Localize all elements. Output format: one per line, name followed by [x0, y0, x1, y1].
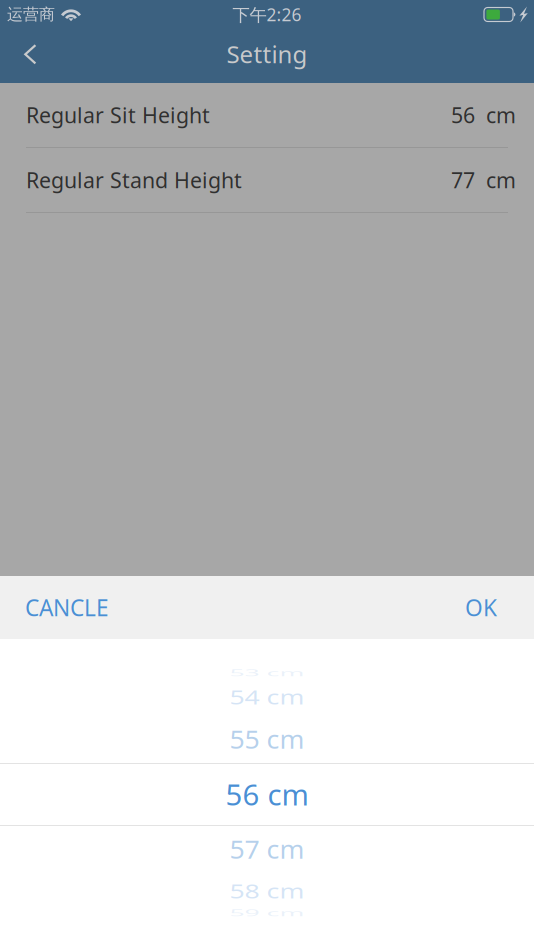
staticText: Regular Stand Height [26, 166, 242, 194]
staticText: 58 cm [229, 873, 304, 909]
staticText: 56 [451, 101, 475, 129]
staticText: 57 cm [229, 831, 304, 867]
staticText: cm [486, 101, 516, 129]
staticText: Setting [226, 38, 307, 70]
staticText: 54 cm [229, 679, 304, 715]
staticText: Regular Sit Height [26, 101, 210, 129]
button[interactable]: Regular Sit Height [0, 83, 534, 148]
staticText: cm [486, 166, 516, 194]
button[interactable]: CANCLE [0, 576, 200, 639]
staticText: 56 cm [225, 774, 308, 813]
staticText: 53 cm [229, 655, 304, 691]
staticText: 运营商 [7, 5, 55, 24]
staticText: 59 cm [229, 895, 304, 931]
staticText: 77 [451, 166, 475, 194]
button[interactable]: OK [374, 576, 534, 639]
staticText: OK [465, 592, 497, 622]
staticText: CANCLE [25, 592, 109, 622]
staticText: 55 cm [229, 721, 304, 757]
staticText: 下午2:26 [232, 3, 301, 26]
button[interactable]: Regular Stand Height [0, 148, 534, 213]
button[interactable]: Back [0, 29, 58, 83]
